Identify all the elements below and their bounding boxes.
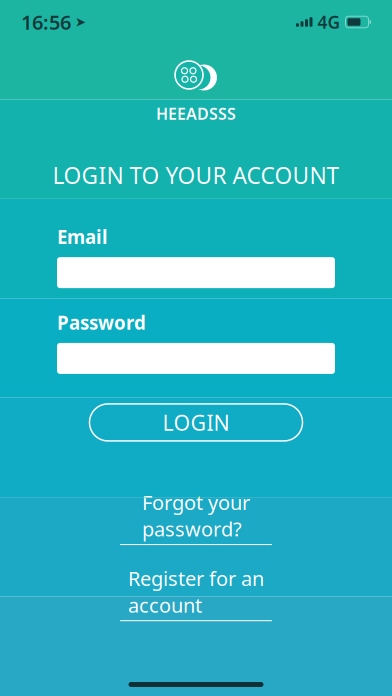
- staticText: ➤: [75, 14, 86, 29]
- button[interactable]: Forgot your password?: [120, 489, 272, 545]
- staticText: LOGIN TO YOUR ACCOUNT: [52, 160, 339, 190]
- button[interactable]: LOGIN: [89, 404, 302, 441]
- button[interactable]: [57, 257, 335, 288]
- staticText: LOGIN: [162, 408, 229, 437]
- staticText: 16:56: [21, 9, 71, 35]
- staticText: 4G: [317, 10, 340, 33]
- staticText: Password: [57, 310, 146, 335]
- staticText: HEEADSSS: [156, 103, 236, 124]
- button[interactable]: [57, 343, 335, 374]
- staticText: Forgot your password?: [142, 489, 250, 542]
- staticText: Register for an account: [128, 565, 264, 618]
- staticText: Email: [57, 224, 108, 249]
- button[interactable]: Register for an account: [120, 565, 272, 621]
